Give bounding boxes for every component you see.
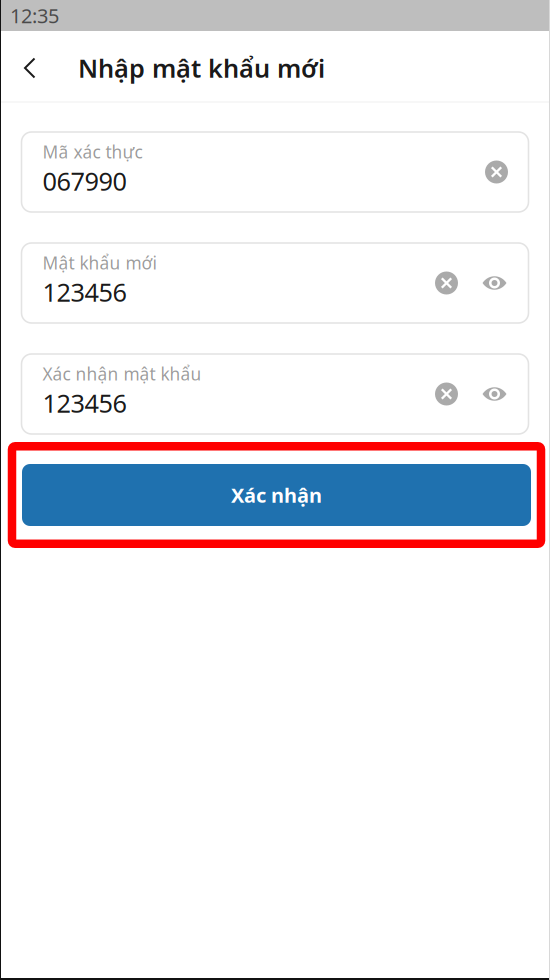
button[interactable]: Xác nhận [22, 464, 531, 526]
staticText: Mã xác thực [42, 140, 142, 163]
button[interactable]: Clear text [478, 149, 514, 195]
staticText: 123456 [42, 386, 126, 420]
button[interactable]: Back [8, 46, 52, 90]
staticText: Mật khẩu mới [42, 251, 156, 274]
staticText: Xác nhận [231, 482, 322, 508]
staticText: 12:35 [10, 2, 59, 29]
button[interactable]: Show password [476, 371, 512, 417]
staticText: 067990 [42, 164, 126, 198]
button[interactable]: Clear text [428, 371, 464, 417]
button[interactable]: Clear text [428, 260, 464, 306]
staticText: Nhập mật khẩu mới [78, 51, 325, 85]
staticText: 123456 [42, 275, 126, 309]
staticText: Xác nhận mật khẩu [42, 362, 201, 385]
button[interactable]: Show password [476, 260, 512, 306]
